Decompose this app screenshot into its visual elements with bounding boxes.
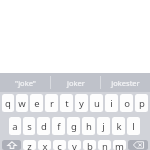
button[interactable]: t bbox=[60, 94, 73, 112]
button[interactable]: joker bbox=[51, 73, 100, 92]
button[interactable]: h bbox=[82, 117, 95, 135]
button[interactable]: r bbox=[45, 94, 58, 112]
button[interactable]: a bbox=[9, 117, 21, 135]
staticText: o bbox=[124, 97, 130, 110]
staticText: k bbox=[116, 120, 122, 133]
button[interactable]: d bbox=[37, 117, 50, 135]
staticText: v bbox=[72, 140, 77, 150]
button[interactable]: "joke" bbox=[0, 73, 50, 92]
staticText: t bbox=[65, 97, 69, 110]
button[interactable]: n bbox=[98, 140, 111, 150]
button[interactable]: k bbox=[112, 117, 125, 135]
staticText: z bbox=[27, 140, 32, 150]
button[interactable]: jokester bbox=[101, 73, 150, 92]
button[interactable]: l bbox=[127, 117, 140, 135]
button[interactable]: Shift bbox=[2, 140, 21, 150]
staticText: "joke" bbox=[15, 78, 36, 88]
staticText: e bbox=[34, 97, 40, 110]
staticText: w bbox=[18, 97, 26, 110]
staticText: p bbox=[139, 97, 145, 110]
button[interactable]: u bbox=[90, 94, 103, 112]
button[interactable]: f bbox=[52, 117, 65, 135]
staticText: y bbox=[79, 97, 84, 110]
button[interactable]: z bbox=[23, 140, 36, 150]
button[interactable]: Backspace bbox=[128, 140, 148, 150]
staticText: f bbox=[57, 120, 61, 133]
staticText: d bbox=[41, 120, 47, 133]
staticText: b bbox=[87, 140, 93, 150]
button[interactable]: o bbox=[120, 94, 133, 112]
staticText: a bbox=[12, 120, 18, 133]
staticText: x bbox=[42, 140, 48, 150]
staticText: u bbox=[94, 97, 100, 110]
staticText: h bbox=[86, 120, 92, 133]
staticText: m bbox=[115, 140, 124, 150]
button[interactable]: m bbox=[113, 140, 126, 150]
button[interactable]: g bbox=[67, 117, 80, 135]
staticText: j bbox=[102, 120, 105, 133]
staticText: s bbox=[27, 120, 32, 133]
button[interactable]: c bbox=[53, 140, 66, 150]
staticText: n bbox=[102, 140, 108, 150]
button[interactable]: v bbox=[68, 140, 81, 150]
button[interactable]: x bbox=[38, 140, 51, 150]
button[interactable]: y bbox=[75, 94, 88, 112]
button[interactable]: q bbox=[2, 94, 14, 112]
button[interactable]: j bbox=[97, 117, 110, 135]
staticText: c bbox=[57, 140, 62, 150]
staticText: l bbox=[132, 120, 135, 133]
button[interactable]: s bbox=[23, 117, 35, 135]
staticText: i bbox=[110, 97, 113, 110]
staticText: q bbox=[5, 97, 11, 110]
staticText: joker bbox=[67, 78, 85, 88]
button[interactable]: p bbox=[135, 94, 148, 112]
staticText: r bbox=[50, 97, 54, 110]
staticText: g bbox=[71, 120, 77, 133]
button[interactable]: b bbox=[83, 140, 96, 150]
button[interactable]: i bbox=[105, 94, 118, 112]
staticText: jokester bbox=[111, 78, 140, 88]
button[interactable]: w bbox=[16, 94, 28, 112]
button[interactable]: e bbox=[30, 94, 43, 112]
